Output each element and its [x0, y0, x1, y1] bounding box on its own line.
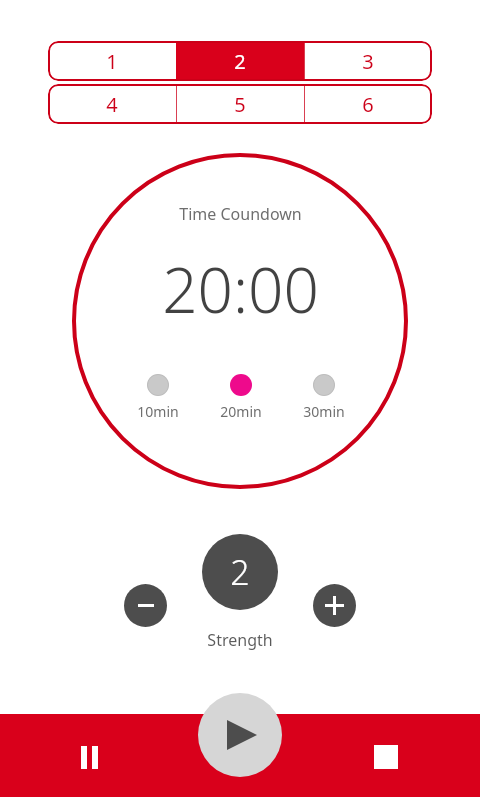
button[interactable]: 5 [176, 84, 304, 124]
button[interactable]: 10min [126, 373, 189, 421]
staticText: 2 [230, 549, 250, 595]
staticText: 5 [234, 91, 246, 118]
button[interactable]: 4 [48, 84, 176, 124]
button[interactable]: 2 [202, 534, 278, 610]
button[interactable]: 1 [48, 41, 176, 81]
button[interactable]: Pause [66, 734, 112, 780]
button[interactable]: Increase strength [313, 584, 356, 627]
button[interactable]: 2 [176, 41, 304, 81]
button[interactable]: 3 [304, 41, 432, 81]
staticText: 6 [362, 91, 374, 118]
staticText: 20:00 [162, 247, 319, 331]
staticText: 4 [106, 91, 118, 118]
staticText: 30min [303, 402, 345, 421]
button[interactable]: Stop [363, 734, 409, 780]
staticText: Time Coundown [179, 203, 302, 225]
button[interactable]: Play [198, 693, 282, 777]
button[interactable]: 30min [292, 373, 355, 421]
button[interactable]: Decrease strength [124, 584, 167, 627]
button[interactable]: 20min [209, 373, 272, 421]
staticText: 3 [362, 48, 374, 75]
staticText: Strength [207, 629, 273, 651]
staticText: 20min [220, 402, 262, 421]
staticText: 10min [137, 402, 179, 421]
staticText: 1 [106, 48, 118, 75]
button[interactable]: 6 [304, 84, 432, 124]
staticText: 2 [234, 48, 246, 75]
